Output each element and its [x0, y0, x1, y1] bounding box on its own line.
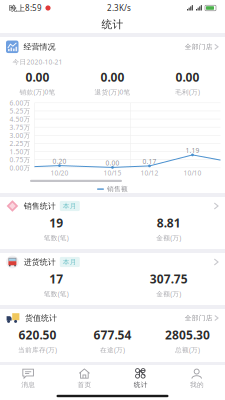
staticText: 销售额: [107, 185, 128, 193]
button[interactable]: 全部门店: [185, 311, 219, 325]
staticText: 10/15: [103, 168, 121, 177]
staticText: 消息: [21, 381, 35, 389]
staticText: 笔数(笔): [44, 233, 69, 242]
staticText: 金额(万): [156, 233, 181, 242]
staticText: 在途(万): [100, 345, 125, 354]
staticText: 进货统计: [24, 257, 56, 267]
staticText: 0.75万: [9, 155, 30, 164]
staticText: 退货(万)0笔: [94, 88, 130, 96]
staticText: 0.00万: [9, 163, 30, 172]
button[interactable]: 首页: [56, 365, 112, 392]
staticText: 1.19: [185, 146, 199, 155]
staticText: 620.50: [18, 327, 56, 343]
staticText: 6.00万: [9, 98, 30, 107]
staticText: 销款(万)0笔: [19, 88, 55, 96]
staticText: 经营情况: [23, 42, 55, 52]
staticText: 10/20: [50, 168, 68, 177]
button[interactable]: 统计: [112, 365, 169, 392]
staticText: 10/10: [183, 168, 201, 177]
staticText: 0.20: [52, 157, 66, 166]
staticText: 首页: [77, 381, 91, 389]
staticText: 677.54: [93, 327, 131, 343]
staticText: 今日2020-10-21: [12, 57, 62, 66]
staticText: 当前库存(万): [18, 345, 57, 354]
staticText: 0.00: [100, 69, 124, 85]
button[interactable]: 进货统计: [0, 253, 225, 305]
staticText: 1.50万: [9, 147, 30, 156]
staticText: 销售统计: [24, 201, 56, 211]
staticText: 笔数(笔): [44, 289, 69, 298]
staticText: 2.25万: [9, 139, 30, 148]
staticText: 5.25万: [9, 106, 30, 115]
staticText: 货值统计: [25, 313, 57, 323]
staticText: 总额(万): [175, 345, 200, 354]
staticText: 0.00: [25, 69, 49, 85]
staticText: 2805.30: [165, 327, 210, 343]
button[interactable]: 全部门店: [185, 40, 219, 54]
staticText: 晚上8:59: [9, 3, 42, 13]
staticText: 8.81: [157, 215, 181, 231]
staticText: 统计: [101, 18, 123, 31]
staticText: 10/12: [140, 168, 158, 177]
staticText: 统计: [134, 381, 148, 389]
button[interactable]: 销售统计: [0, 197, 225, 249]
staticText: 全部门店: [185, 314, 213, 322]
button[interactable]: 我的: [169, 365, 225, 392]
staticText: 17: [49, 271, 63, 287]
staticText: 2.3K/s: [107, 3, 131, 13]
staticText: 307.75: [150, 271, 188, 287]
staticText: 19: [49, 215, 63, 231]
staticText: 本月: [63, 258, 77, 266]
staticText: 金额(万): [156, 289, 181, 298]
staticText: 4.50万: [9, 115, 30, 123]
staticText: 我的: [190, 381, 204, 389]
staticText: 本月: [63, 202, 77, 210]
staticText: 毛利(万): [175, 88, 200, 96]
staticText: 0.00: [175, 69, 199, 85]
staticText: 0.00: [105, 158, 119, 167]
staticText: 全部门店: [185, 43, 213, 51]
staticText: 0.17: [142, 157, 156, 166]
staticText: 3.00万: [9, 131, 30, 140]
button[interactable]: 消息: [0, 365, 56, 392]
staticText: 3.75万: [9, 123, 30, 132]
